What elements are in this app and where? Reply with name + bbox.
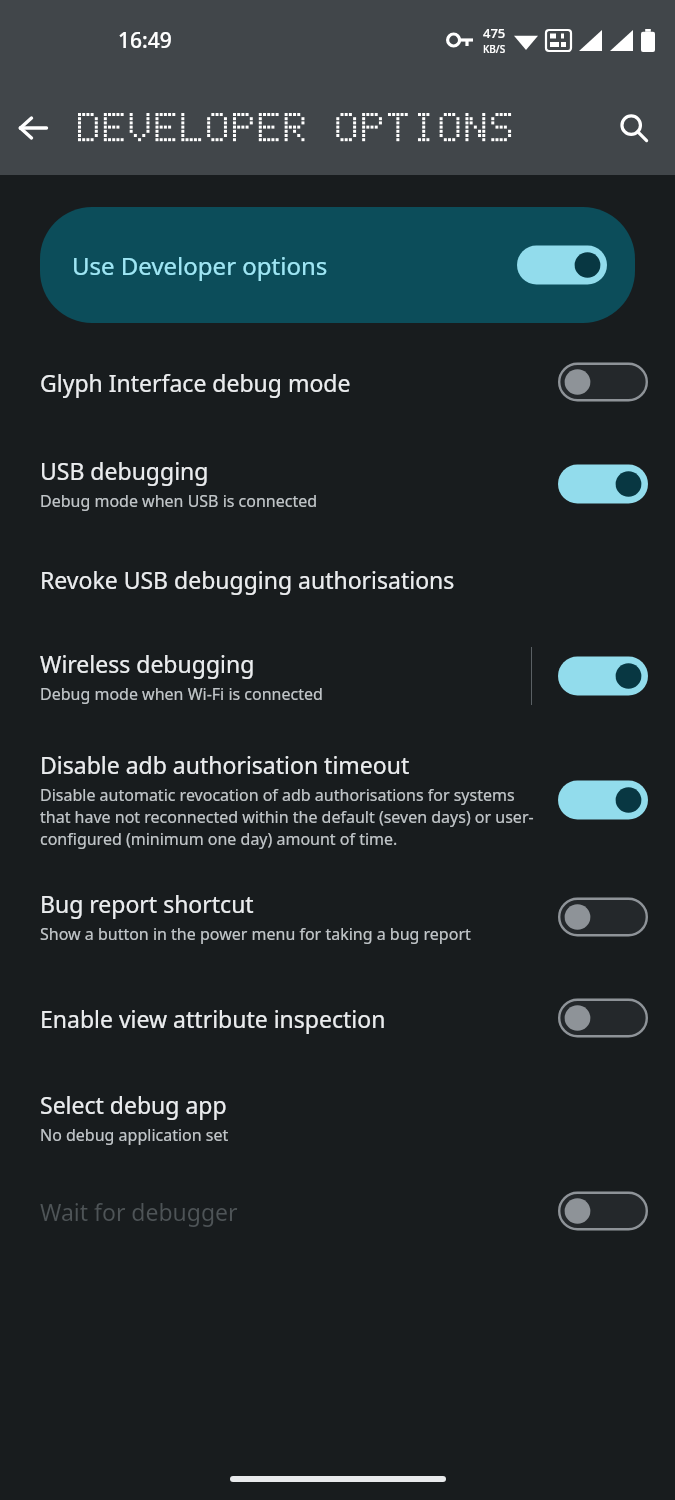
button[interactable]: Revoke USB debugging authorisations bbox=[0, 558, 675, 601]
staticText: Bug report shortcut bbox=[40, 888, 254, 919]
staticText: Enable view attribute inspection bbox=[40, 1003, 386, 1034]
staticText: Revoke USB debugging authorisations bbox=[40, 564, 455, 595]
button[interactable]: Glyph Interface debug mode bbox=[0, 343, 675, 421]
staticText: Show a button in the power menu for taki… bbox=[40, 923, 471, 945]
staticText: Disable adb authorisation timeout bbox=[40, 749, 410, 780]
button[interactable]: USB debugging bbox=[0, 445, 675, 522]
button[interactable]: Bug report shortcut bbox=[0, 880, 675, 953]
button[interactable]: Enable view attribute inspection bbox=[0, 983, 675, 1053]
staticText: Glyph Interface debug mode bbox=[40, 367, 351, 398]
button[interactable]: Use Developer options bbox=[40, 207, 635, 323]
button[interactable]: Search bbox=[601, 95, 667, 161]
staticText: No debug application set bbox=[40, 1124, 229, 1146]
button[interactable]: Wireless debugging bbox=[0, 639, 675, 713]
staticText: USB debugging bbox=[40, 455, 209, 486]
staticText: 16:49 bbox=[118, 26, 172, 55]
staticText: Use Developer options bbox=[72, 249, 517, 282]
staticText: Select debug app bbox=[40, 1089, 227, 1120]
staticText: Wireless debugging bbox=[40, 648, 255, 679]
staticText: Wait for debugger bbox=[40, 1196, 238, 1227]
staticText: Debug mode when USB is connected bbox=[40, 490, 318, 512]
button[interactable]: Select debug app bbox=[0, 1085, 675, 1150]
staticText: 475 bbox=[483, 24, 506, 42]
button[interactable]: Disable adb authorisation timeout bbox=[0, 745, 675, 854]
staticText: KB/S bbox=[483, 42, 506, 56]
staticText: Debug mode when Wi-Fi is connected bbox=[40, 683, 323, 705]
button[interactable]: Wait for debugger bbox=[0, 1184, 675, 1238]
button[interactable]: Back bbox=[0, 95, 66, 161]
staticText: Disable automatic revocation of adb auth… bbox=[40, 784, 544, 850]
